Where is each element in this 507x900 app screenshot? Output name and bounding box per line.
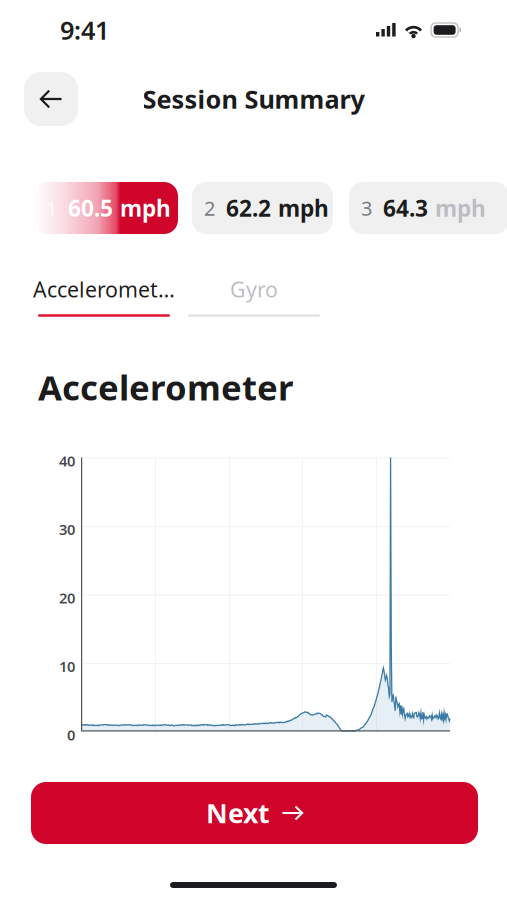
staticText: 40 xyxy=(59,451,75,470)
staticText: 64.3 xyxy=(383,193,428,223)
button[interactable]: 1 xyxy=(34,182,178,234)
staticText: 20 xyxy=(59,588,75,607)
staticText: Session Summary xyxy=(142,82,364,116)
staticText: mph xyxy=(278,193,329,223)
button[interactable]: Back xyxy=(24,72,78,126)
staticText: 2 xyxy=(204,195,215,221)
button[interactable]: Gyro xyxy=(188,276,320,317)
button[interactable]: Accelerometet... xyxy=(38,276,170,317)
staticText: Accelerometet... xyxy=(33,275,175,303)
button[interactable]: 3 xyxy=(349,182,507,234)
staticText: 0 xyxy=(67,725,75,744)
button[interactable]: Next xyxy=(31,782,478,844)
staticText: 30 xyxy=(59,519,75,539)
staticText: 62.2 xyxy=(226,193,271,223)
staticText: mph xyxy=(120,193,171,223)
staticText: Gyro xyxy=(230,275,278,303)
staticText: 3 xyxy=(361,195,372,221)
staticText: 1 xyxy=(46,195,57,221)
button[interactable]: 2 xyxy=(192,182,333,234)
staticText: mph xyxy=(435,193,486,223)
staticText: 10 xyxy=(59,656,75,676)
staticText: 9:41 xyxy=(60,13,109,47)
staticText: 60.5 xyxy=(68,193,113,223)
staticText: Next xyxy=(206,795,270,831)
staticText: Accelerometer xyxy=(38,364,293,410)
